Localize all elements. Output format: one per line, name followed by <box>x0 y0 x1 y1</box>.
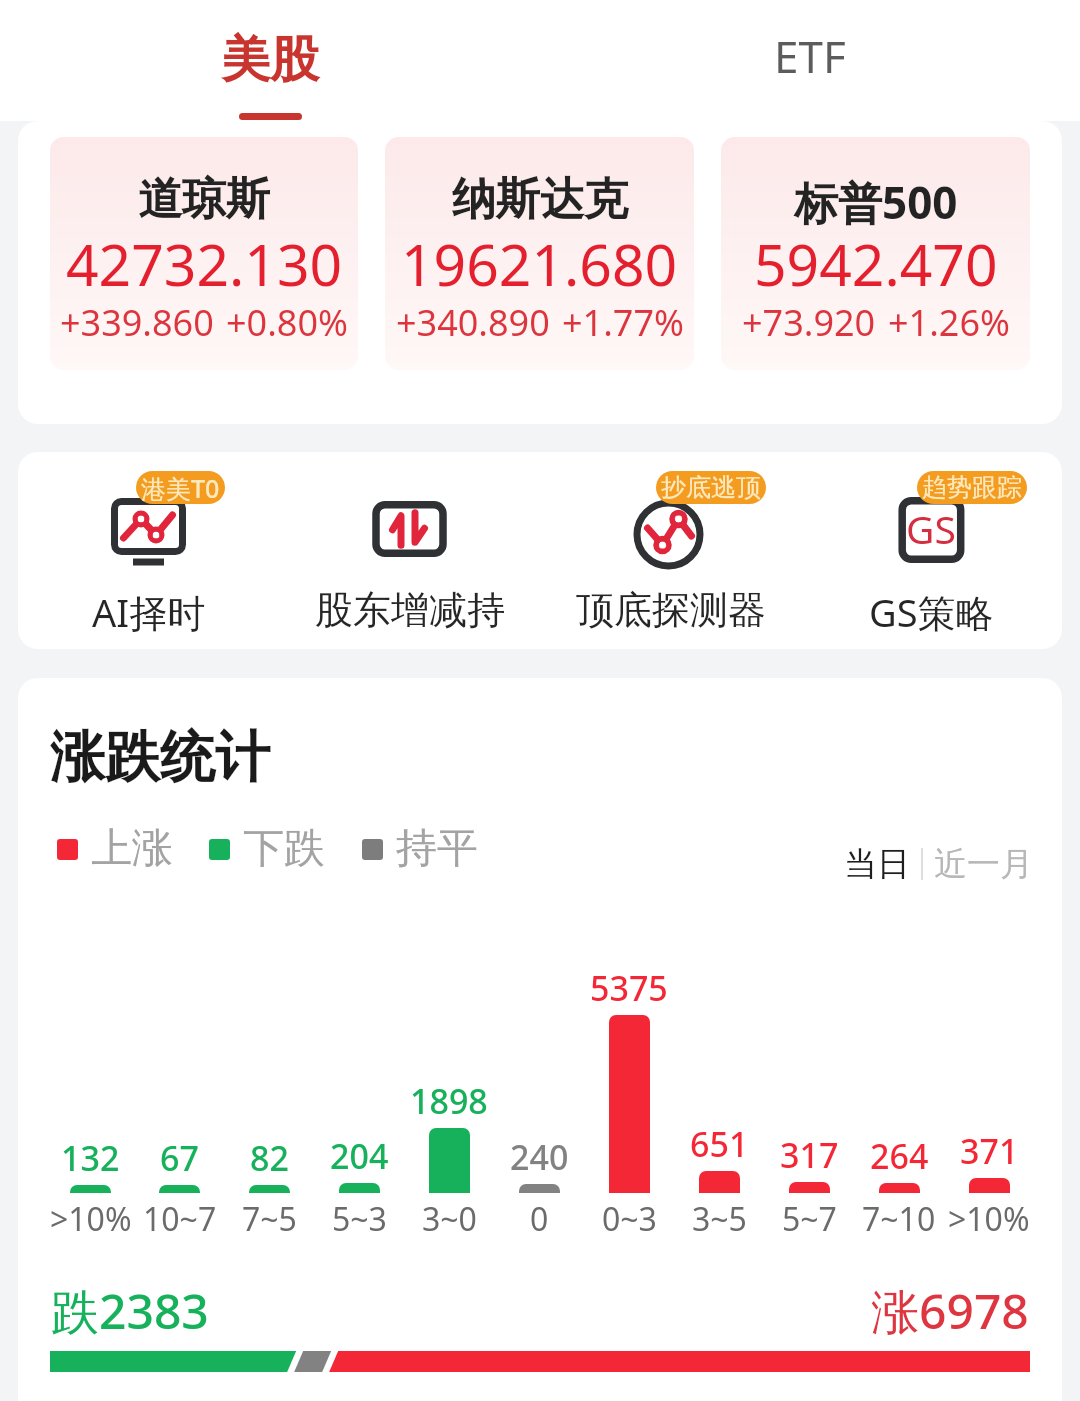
staticText: 67 <box>160 1135 199 1181</box>
staticText: 10~7 <box>143 1197 217 1241</box>
staticText: 涨跌统计 <box>50 723 270 792</box>
staticText: 317 <box>780 1132 839 1178</box>
staticText: ETF <box>774 26 846 86</box>
staticText: 下跌 <box>243 823 325 875</box>
staticText: +0.80% <box>226 298 348 347</box>
staticText: 371 <box>960 1128 1019 1174</box>
staticText: 1898 <box>410 1078 488 1124</box>
staticText: 5~7 <box>782 1197 837 1241</box>
staticText: 240 <box>510 1134 569 1180</box>
staticText: 204 <box>330 1133 389 1179</box>
staticText: 抄底逃顶 <box>661 472 761 503</box>
staticText: +1.26% <box>888 298 1010 347</box>
staticText: GS <box>906 502 956 555</box>
button[interactable]: 股东增减持 <box>279 452 540 649</box>
staticText: 5~3 <box>332 1197 387 1241</box>
staticText: 42732.130 <box>66 225 343 303</box>
staticText: 趋势跟踪 <box>922 472 1022 503</box>
staticText: 7~10 <box>862 1197 936 1241</box>
staticText: 264 <box>870 1133 929 1179</box>
staticText: 132 <box>61 1135 120 1181</box>
staticText: 跌2383 <box>51 1278 209 1344</box>
staticText: +339.860 <box>60 298 214 347</box>
button[interactable]: ETF <box>540 0 1080 121</box>
staticText: 涨6978 <box>871 1278 1029 1344</box>
button[interactable]: GS策略 <box>801 452 1062 649</box>
staticText: 5375 <box>590 965 668 1011</box>
staticText: >10% <box>948 1197 1030 1241</box>
button[interactable]: 近一月 <box>934 839 1033 889</box>
staticText: 港美T0 <box>141 471 220 504</box>
staticText: 0 <box>530 1197 549 1241</box>
staticText: 持平 <box>396 823 478 875</box>
staticText: 上涨 <box>91 823 173 875</box>
staticText: >10% <box>50 1197 132 1241</box>
button[interactable]: 标普500 <box>721 137 1030 370</box>
staticText: +1.77% <box>562 298 684 347</box>
staticText: 近一月 <box>934 843 1033 885</box>
staticText: 标普500 <box>794 172 958 232</box>
staticText: 82 <box>250 1135 289 1181</box>
staticText: 5942.470 <box>754 225 998 303</box>
button[interactable]: 顶底探测器 <box>540 452 801 649</box>
staticText: 3~5 <box>692 1197 747 1241</box>
staticText: 0~3 <box>602 1197 657 1241</box>
button[interactable]: 道琼斯 <box>50 137 358 370</box>
button[interactable]: 美股 <box>0 0 540 121</box>
staticText: 道琼斯 <box>138 172 270 227</box>
staticText: 3~0 <box>422 1197 477 1241</box>
staticText: +73.920 <box>742 298 876 347</box>
staticText: 651 <box>690 1121 749 1167</box>
button[interactable]: 纳斯达克 <box>385 137 694 370</box>
staticText: 股东增减持 <box>315 586 505 634</box>
staticText: 当日 <box>844 843 910 885</box>
button[interactable]: 当日 <box>844 839 910 889</box>
staticText: 美股 <box>221 29 319 91</box>
staticText: +340.890 <box>396 298 550 347</box>
staticText: GS策略 <box>869 586 994 638</box>
staticText: 7~5 <box>242 1197 297 1241</box>
staticText: 纳斯达克 <box>452 172 628 227</box>
staticText: AI择时 <box>92 586 206 638</box>
staticText: 19621.680 <box>401 225 678 303</box>
staticText: 顶底探测器 <box>576 586 766 634</box>
button[interactable]: AI择时 <box>18 452 279 649</box>
